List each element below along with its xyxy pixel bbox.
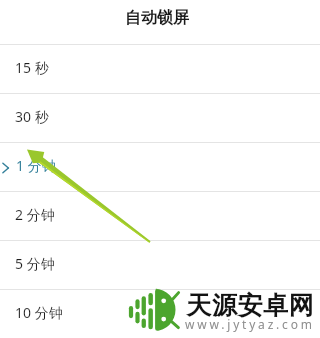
staticText: 2 分钟 — [15, 205, 55, 224]
button[interactable]: 15 秒 — [0, 45, 320, 93]
staticText: 自动锁屏 — [125, 8, 189, 28]
button[interactable]: 30 秒 — [0, 94, 320, 142]
staticText: 1 分钟 — [16, 156, 56, 175]
staticText: 天源安卓网 — [186, 290, 314, 321]
button[interactable]: 2 分钟 — [0, 192, 320, 240]
staticText: 5 分钟 — [15, 254, 55, 273]
button[interactable]: 5 分钟 — [0, 241, 320, 289]
button[interactable]: 10 分钟 — [0, 290, 320, 338]
staticText: 10 分钟 — [15, 303, 63, 322]
staticText: 15 秒 — [15, 58, 49, 77]
staticText: www.jytyaz.com — [185, 316, 315, 332]
button[interactable]: 1 分钟 — [0, 143, 320, 191]
staticText: 30 秒 — [15, 107, 49, 126]
